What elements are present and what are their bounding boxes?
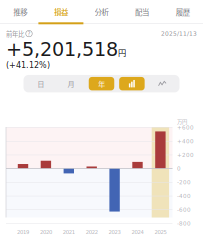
staticText: 0 bbox=[177, 165, 181, 172]
staticText: 2025/11/13 bbox=[161, 30, 197, 37]
staticText: 損益 bbox=[54, 7, 68, 17]
staticText: -400 bbox=[177, 193, 191, 199]
button[interactable]: 分析 bbox=[81, 1, 122, 23]
staticText: 日 bbox=[37, 78, 44, 89]
staticText: 2019 bbox=[17, 229, 29, 235]
staticText: +5,201,518 bbox=[6, 38, 118, 61]
staticText: -800 bbox=[177, 220, 191, 227]
staticText: 円 bbox=[118, 46, 126, 58]
staticText: ? bbox=[27, 30, 30, 37]
staticText: 推移 bbox=[13, 7, 27, 17]
staticText: 2022 bbox=[86, 229, 98, 235]
button[interactable]: About year over year change bbox=[25, 30, 32, 38]
button[interactable]: Bar chart bbox=[117, 77, 147, 90]
staticText: 2023 bbox=[109, 229, 121, 235]
staticText: +600 bbox=[177, 124, 194, 131]
staticText: -200 bbox=[177, 179, 191, 186]
button[interactable]: Monthly bbox=[56, 77, 86, 90]
button[interactable]: Daily bbox=[25, 77, 56, 90]
staticText: (+41.12%) bbox=[6, 61, 50, 70]
staticText: 万円 bbox=[177, 117, 187, 125]
staticText: 前年比 bbox=[6, 29, 24, 38]
button[interactable]: 履歴 bbox=[162, 1, 203, 23]
staticText: 2021 bbox=[63, 229, 75, 235]
staticText: 履歴 bbox=[176, 7, 190, 17]
button[interactable]: 推移 bbox=[0, 1, 41, 23]
staticText: 2020 bbox=[40, 229, 52, 235]
staticText: 年 bbox=[98, 78, 105, 89]
button[interactable]: 配当 bbox=[122, 1, 162, 23]
staticText: +200 bbox=[177, 152, 194, 158]
staticText: 2025 bbox=[154, 229, 166, 235]
staticText: 2024 bbox=[131, 229, 143, 235]
button[interactable]: Yearly bbox=[86, 77, 117, 90]
staticText: +400 bbox=[177, 138, 194, 144]
staticText: -600 bbox=[177, 206, 191, 213]
staticText: 分析 bbox=[94, 7, 108, 17]
staticText: 月 bbox=[68, 78, 75, 89]
button[interactable]: Line chart bbox=[147, 77, 177, 90]
button[interactable]: 損益 bbox=[41, 1, 81, 23]
staticText: 配当 bbox=[135, 7, 149, 17]
